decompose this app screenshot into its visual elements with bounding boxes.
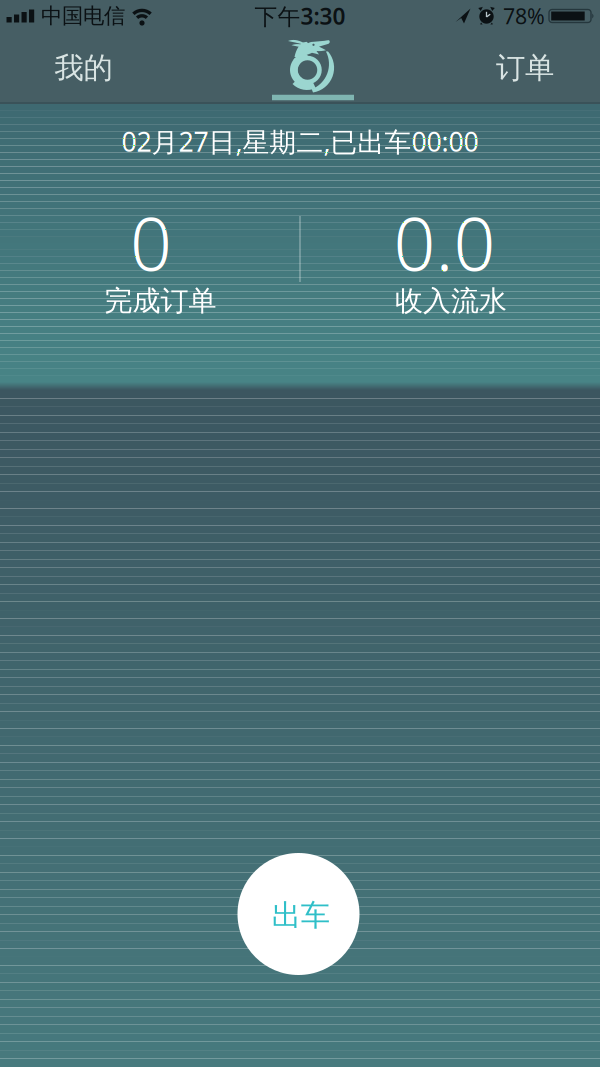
- staticText: 02月27日,星期二,已出车00:00: [121, 124, 478, 159]
- staticText: 中国电信: [41, 3, 125, 29]
- button[interactable]: 订单: [496, 50, 554, 86]
- staticText: 出车: [272, 897, 330, 933]
- staticText: 78%: [503, 2, 545, 30]
- staticText: 订单: [496, 50, 554, 86]
- button[interactable]: 出车: [237, 853, 359, 975]
- staticText: 下午3:30: [254, 1, 345, 31]
- staticText: 收入流水: [395, 284, 507, 318]
- staticText: 完成订单: [104, 284, 216, 318]
- staticText: 我的: [54, 50, 112, 86]
- button[interactable]: 首页: [279, 34, 337, 98]
- button[interactable]: 我的: [54, 50, 112, 86]
- staticText: 0: [130, 194, 172, 291]
- staticText: 0.0: [393, 194, 495, 291]
